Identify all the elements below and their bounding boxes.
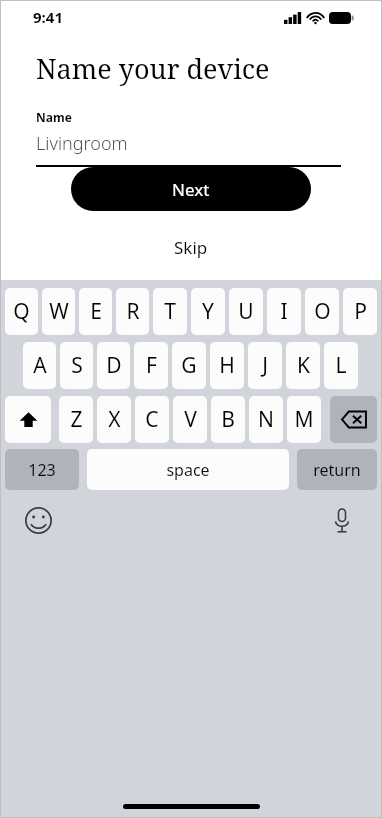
button[interactable]: Shift [5, 396, 51, 443]
staticText: W [49, 297, 69, 326]
staticText: 123 [28, 459, 56, 481]
staticText: D [106, 351, 122, 380]
button[interactable]: Backspace [330, 396, 377, 443]
button[interactable]: Dictation [324, 502, 360, 538]
staticText: L [335, 351, 347, 380]
button[interactable]: L [324, 342, 358, 389]
button[interactable]: J [248, 342, 282, 389]
staticText: 9:41 [33, 7, 63, 27]
button[interactable]: O [305, 288, 339, 335]
button[interactable]: C [135, 396, 169, 443]
staticText: N [258, 405, 274, 434]
button[interactable]: S [60, 342, 93, 389]
staticText: V [184, 405, 197, 434]
button[interactable]: Z [59, 396, 93, 443]
button[interactable]: return [297, 449, 377, 490]
button[interactable]: M [287, 396, 321, 443]
button[interactable]: X [97, 396, 131, 443]
staticText: B [221, 405, 235, 434]
staticText: C [145, 405, 159, 434]
button[interactable]: I [267, 288, 301, 335]
button[interactable]: W [42, 288, 75, 335]
staticText: S [71, 351, 83, 380]
button[interactable]: A [23, 342, 56, 389]
button[interactable]: K [286, 342, 320, 389]
button[interactable]: Q [5, 288, 38, 335]
button[interactable]: Skip [0, 236, 382, 259]
button[interactable]: T [153, 288, 187, 335]
staticText: R [126, 297, 140, 326]
staticText: Skip [174, 236, 208, 259]
staticText: G [181, 351, 197, 380]
button[interactable]: B [211, 396, 245, 443]
button[interactable]: H [210, 342, 244, 389]
staticText: H [219, 351, 235, 380]
staticText: K [297, 351, 310, 380]
button[interactable]: D [97, 342, 130, 389]
staticText: Z [70, 405, 83, 434]
button[interactable]: Emoji [20, 502, 56, 538]
staticText: A [33, 351, 47, 380]
staticText: P [354, 297, 367, 326]
staticText: M [294, 405, 314, 434]
button[interactable]: N [249, 396, 283, 443]
button[interactable]: F [134, 342, 168, 389]
staticText: Q [13, 297, 30, 326]
staticText: Name your device [36, 50, 270, 87]
button[interactable]: P [343, 288, 377, 335]
staticText: Livingroom [36, 131, 128, 156]
staticText: space [166, 459, 210, 481]
staticText: Y [202, 297, 214, 326]
button[interactable]: space [87, 449, 289, 490]
button[interactable]: V [173, 396, 207, 443]
button[interactable]: R [116, 288, 149, 335]
button[interactable]: Next [71, 167, 311, 211]
staticText: I [280, 297, 288, 326]
staticText: J [262, 351, 268, 380]
button[interactable]: G [172, 342, 206, 389]
button[interactable]: 123 [5, 449, 79, 490]
staticText: X [108, 405, 121, 434]
staticText: E [90, 297, 102, 326]
staticText: F [146, 351, 157, 380]
staticText: U [238, 297, 254, 326]
staticText: return [313, 459, 361, 481]
staticText: T [164, 297, 176, 326]
staticText: Next [172, 178, 210, 201]
button[interactable]: E [79, 288, 112, 335]
button[interactable]: Y [191, 288, 225, 335]
staticText: Name [36, 109, 72, 125]
staticText: O [314, 297, 331, 326]
button[interactable]: U [229, 288, 263, 335]
